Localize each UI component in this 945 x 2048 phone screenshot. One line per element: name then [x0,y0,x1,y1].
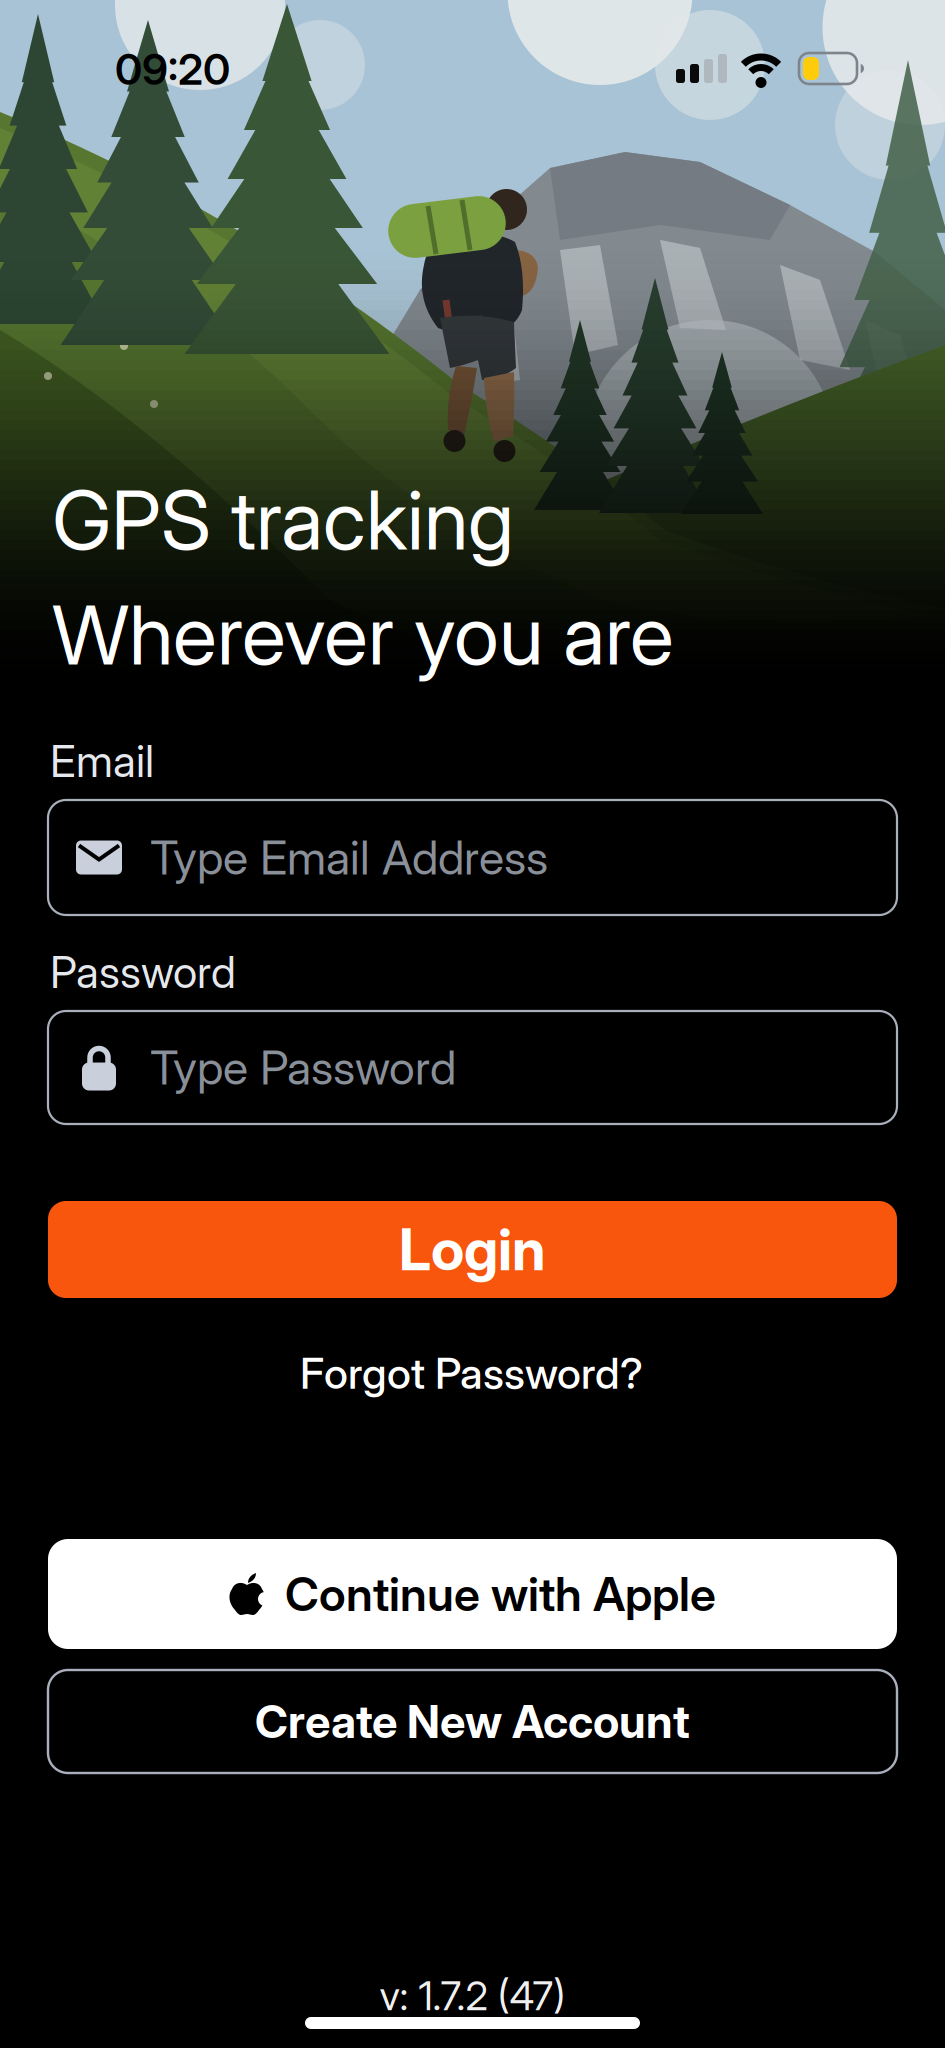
button[interactable]: Continue with Apple [48,1539,897,1649]
staticText: Type Email Address [150,830,548,885]
button[interactable]: Type Password [48,1011,897,1124]
staticText: Create New Account [255,1695,690,1748]
staticText: GPS tracking [52,472,514,568]
button[interactable]: Login [48,1201,897,1298]
staticText: v: 1.7.2 (47) [379,1972,565,2019]
staticText: Login [399,1216,546,1283]
staticText: Wherever you are [52,587,674,683]
staticText: 09:20 [115,44,230,94]
button[interactable]: Create New Account [48,1670,897,1773]
button[interactable]: Type Email Address [48,800,897,915]
staticText: Password [50,946,236,998]
staticText: Email [50,735,154,787]
staticText: Forgot Password? [300,1348,643,1398]
staticText: Type Password [150,1040,456,1095]
staticText: Continue with Apple [285,1566,716,1622]
button[interactable]: Forgot Password? [300,1348,643,1398]
